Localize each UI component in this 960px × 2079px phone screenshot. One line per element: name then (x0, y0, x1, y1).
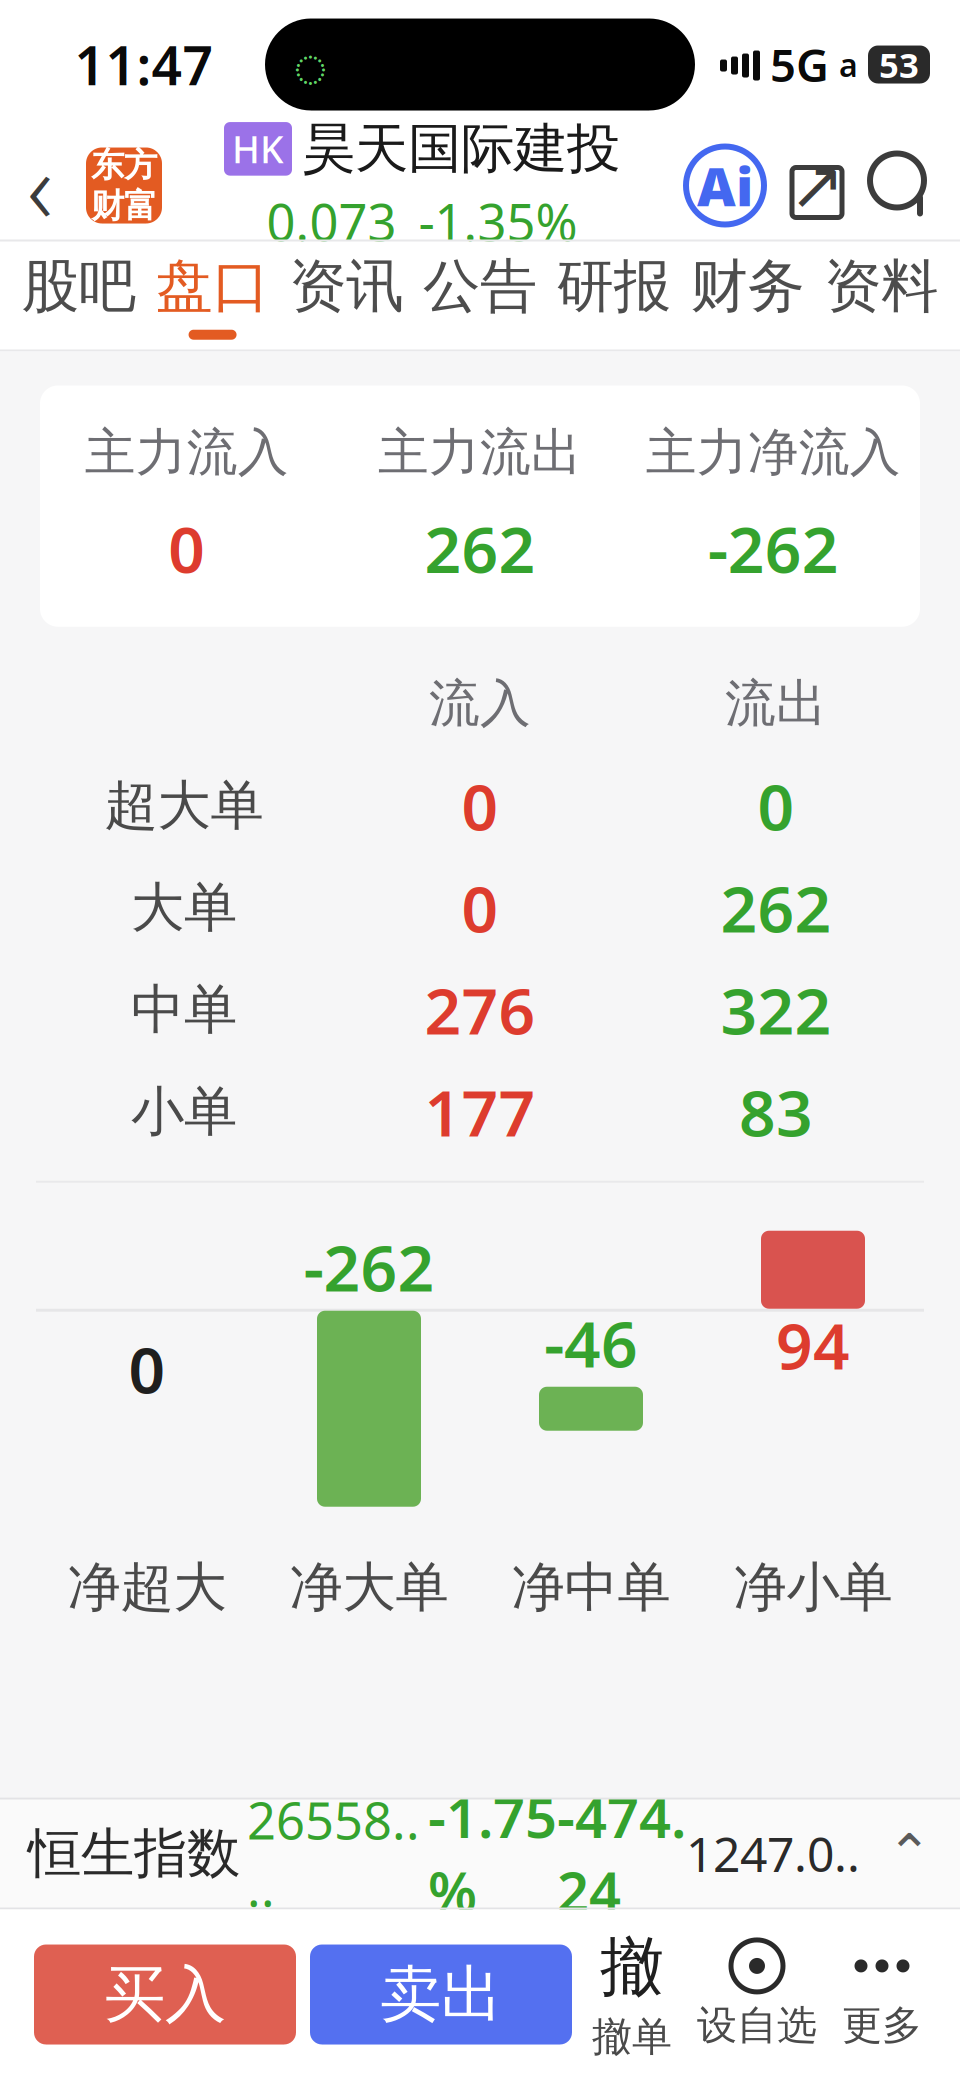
staticText: 股吧 (22, 251, 136, 322)
staticText: ◌ (293, 25, 328, 103)
staticText: Ai (697, 150, 753, 221)
button[interactable]: 买入 (34, 1944, 296, 2044)
staticText: 财富 (91, 185, 157, 226)
staticText: 设自选 (697, 2001, 817, 2050)
staticText: 0 (461, 763, 498, 848)
staticText: 流入 (429, 673, 531, 735)
button[interactable]: 更多 (822, 1939, 960, 2050)
staticText: -262 (708, 506, 839, 591)
button[interactable]: 财务 (681, 241, 814, 349)
button[interactable]: 股吧 (12, 241, 146, 349)
staticText: 小单 (131, 1079, 237, 1144)
staticText: -46 (544, 1300, 638, 1385)
button[interactable]: 盘口 (146, 241, 279, 349)
staticText: 撤单 (592, 2012, 672, 2061)
staticText: ‹ (27, 120, 53, 251)
staticText: 主力流入 (85, 421, 289, 484)
staticText: 盘口 (156, 251, 270, 322)
staticText: 53 (879, 41, 919, 87)
staticText: -1.75% (428, 1779, 557, 1928)
staticText: 262 (424, 506, 535, 591)
button[interactable]: 资讯 (279, 241, 413, 349)
staticText: 主力净流入 (646, 421, 901, 484)
staticText: a (839, 43, 858, 86)
staticText: 1247.0... (686, 1758, 860, 1949)
staticText: 0 (168, 506, 205, 591)
staticText: 净超大 (67, 1555, 226, 1620)
staticText: 276 (424, 967, 535, 1052)
staticText: 研报 (557, 251, 671, 322)
button[interactable]: 分享 (780, 148, 854, 222)
button[interactable]: 公告 (413, 241, 547, 349)
staticText: 262 (720, 865, 831, 950)
staticText: 超大单 (104, 773, 263, 838)
staticText: 0 (757, 763, 794, 848)
staticText: 净大单 (289, 1555, 448, 1620)
button[interactable]: 搜索 (862, 145, 942, 225)
button[interactable]: 恒生指数 (0, 1797, 960, 1909)
button[interactable]: Ai 助手 (682, 142, 768, 228)
staticText: 净中单 (511, 1555, 670, 1620)
staticText: 主力流出 (378, 421, 582, 484)
staticText: 大单 (131, 875, 237, 940)
button[interactable]: 卖出 (310, 1944, 572, 2044)
staticText: 东方 (91, 145, 157, 185)
staticText: 净小单 (733, 1555, 892, 1620)
staticText: ↗ (789, 148, 845, 223)
staticText: 94 (776, 1302, 850, 1387)
staticText: 撤 (600, 1928, 664, 2006)
staticText: 26558.... (247, 1786, 420, 1921)
staticText: 财务 (690, 251, 804, 322)
staticText: 公告 (423, 251, 537, 322)
button[interactable]: 研报 (547, 241, 681, 349)
staticText: 昊天国际建投 (302, 116, 620, 182)
staticText: 0.073 (266, 188, 396, 255)
button[interactable]: 撤 (572, 1928, 692, 2061)
staticText: 0 (128, 1326, 165, 1411)
staticText: ⌃ (887, 1823, 932, 1884)
staticText: 322 (720, 967, 831, 1052)
staticText: 0 (461, 865, 498, 950)
staticText: 资讯 (289, 251, 403, 322)
staticText: 买入 (104, 1957, 226, 2032)
staticText: 恒生指数 (28, 1821, 240, 1886)
staticText: -474.24 (557, 1779, 686, 1928)
staticText: 资料 (824, 251, 938, 322)
staticText: -1.35% (418, 188, 577, 255)
staticText: 流出 (725, 673, 827, 735)
staticText: HK (232, 124, 284, 174)
staticText: 177 (424, 1069, 535, 1154)
staticText: 更多 (842, 2001, 922, 2050)
button[interactable]: 资料 (814, 241, 948, 349)
staticText: 中单 (131, 977, 237, 1042)
staticText: -262 (303, 1224, 434, 1309)
staticText: 11:47 (74, 29, 213, 100)
button[interactable]: 设自选 (692, 1939, 822, 2050)
button[interactable]: 东方财富 (86, 147, 162, 223)
staticText: 卖出 (380, 1957, 502, 2032)
staticText: 5G (770, 34, 829, 95)
button[interactable]: 返回 (0, 135, 86, 235)
staticText: 83 (739, 1069, 813, 1154)
